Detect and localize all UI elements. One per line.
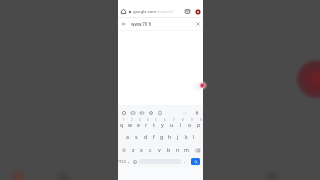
staticText: www.70 fi <box>131 21 193 27</box>
staticText: 2 <box>131 118 133 122</box>
staticText: t <box>153 121 155 128</box>
staticText: 5 <box>155 118 157 122</box>
staticText: a <box>126 133 129 140</box>
staticText: 6 <box>164 118 166 122</box>
staticText: w <box>128 121 133 128</box>
button[interactable]: ?123 <box>118 156 126 167</box>
staticText: c <box>149 146 152 153</box>
staticText: m <box>184 146 189 153</box>
button[interactable]: e <box>134 120 142 132</box>
staticText: d <box>144 133 148 140</box>
button[interactable]: d <box>141 132 150 144</box>
button[interactable]: Settings <box>146 105 155 120</box>
staticText: /search?q=mobi+l <box>157 9 183 15</box>
staticText: q <box>120 121 124 128</box>
button[interactable]: v <box>155 144 164 156</box>
staticText: f <box>153 133 155 140</box>
staticText: 1 <box>123 118 125 122</box>
staticText: e <box>137 121 140 128</box>
button[interactable]: Close <box>193 18 203 30</box>
button[interactable]: n <box>173 144 182 156</box>
staticText: 9 <box>191 118 193 122</box>
button[interactable]: h <box>166 132 174 144</box>
staticText: 4 <box>147 118 149 122</box>
button[interactable]: Voice input <box>192 105 201 120</box>
staticText: b <box>167 146 171 153</box>
button[interactable]: Google search <box>119 105 128 120</box>
button[interactable]: j <box>174 132 182 144</box>
staticText: v <box>158 146 161 153</box>
button[interactable]: o <box>185 120 194 132</box>
staticText: 3 <box>139 118 141 122</box>
button[interactable]: Home <box>118 6 129 17</box>
staticText: p <box>197 121 201 128</box>
button[interactable]: Account <box>192 6 203 17</box>
button[interactable]: q <box>118 120 126 132</box>
staticText: l <box>193 133 195 140</box>
button[interactable]: Shift <box>118 144 129 156</box>
button[interactable]: c <box>146 144 155 156</box>
staticText: . <box>184 158 186 165</box>
button[interactable]: u <box>167 120 176 132</box>
button[interactable]: s <box>132 132 141 144</box>
button[interactable]: t <box>150 120 158 132</box>
staticText: , <box>128 158 130 165</box>
staticText: g <box>160 133 164 140</box>
button[interactable]: Clipboard <box>155 105 164 120</box>
button[interactable]: w <box>126 120 134 132</box>
button[interactable]: f <box>150 132 158 144</box>
button[interactable]: . <box>182 156 188 167</box>
staticText: 7 <box>173 118 175 122</box>
staticText: 0 <box>200 118 202 122</box>
button[interactable]: , <box>126 156 131 167</box>
button[interactable]: a <box>123 132 132 144</box>
staticText: ?123 <box>118 159 126 164</box>
button[interactable]: r <box>142 120 150 132</box>
button[interactable]: Emoji <box>131 156 138 167</box>
staticText: i <box>180 121 182 128</box>
staticText: y <box>161 121 164 128</box>
staticText: 8 <box>182 118 184 122</box>
button[interactable]: Backspace <box>191 144 203 156</box>
button[interactable]: y <box>158 120 167 132</box>
button[interactable]: l <box>190 132 198 144</box>
staticText: s <box>135 133 138 140</box>
staticText: o <box>188 121 192 128</box>
button[interactable]: x <box>137 144 146 156</box>
button[interactable]: More options <box>180 105 189 120</box>
staticText: u <box>170 121 174 128</box>
staticText: x <box>140 146 143 153</box>
staticText: j <box>177 133 179 140</box>
staticText: h <box>168 133 172 140</box>
button[interactable]: z <box>129 144 137 156</box>
button[interactable]: Stickers <box>137 105 146 120</box>
button[interactable]: i <box>176 120 185 132</box>
button[interactable]: k <box>182 132 190 144</box>
button[interactable]: Search <box>191 158 200 165</box>
staticText: z <box>132 146 135 153</box>
button[interactable]: m <box>182 144 191 156</box>
staticText: google.com <box>133 9 157 15</box>
staticText: n <box>176 146 180 153</box>
button[interactable]: p <box>194 120 203 132</box>
button[interactable]: b <box>164 144 173 156</box>
staticText: k <box>185 133 188 140</box>
button[interactable]: GIF <box>128 105 137 120</box>
button[interactable]: Share page <box>183 6 192 17</box>
button[interactable]: Back <box>118 18 129 30</box>
staticText: r <box>145 121 148 128</box>
button[interactable]: g <box>158 132 166 144</box>
